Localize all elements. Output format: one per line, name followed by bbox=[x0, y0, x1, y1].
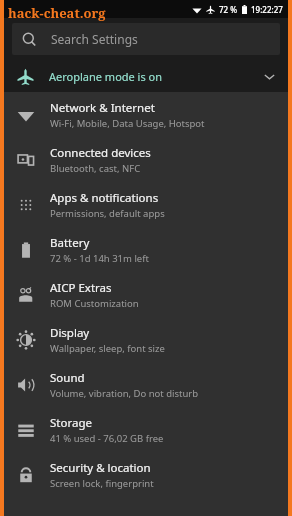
staticText: Network & Internet bbox=[50, 100, 155, 116]
staticText: Storage bbox=[50, 415, 92, 431]
staticText: hack-cheat.org bbox=[8, 4, 106, 22]
staticText: Search Settings bbox=[51, 31, 138, 47]
staticText: 72 % bbox=[219, 4, 238, 15]
button[interactable]: Network & Internet bbox=[4, 92, 288, 137]
staticText: Aeroplane mode is on bbox=[49, 69, 163, 84]
staticText: 41 % used - 76,02 GB free bbox=[50, 432, 164, 445]
staticText: Battery bbox=[50, 235, 90, 251]
staticText: Volume, vibration, Do not disturb bbox=[50, 387, 199, 400]
button[interactable]: Aeroplane mode is on bbox=[4, 60, 288, 92]
button[interactable]: Search Settings bbox=[12, 23, 280, 55]
button[interactable]: AICP Extras bbox=[4, 272, 288, 317]
button[interactable]: Connected devices bbox=[4, 137, 288, 182]
staticText: Sound bbox=[50, 370, 85, 386]
button[interactable]: Apps & notifications bbox=[4, 182, 288, 227]
staticText: AICP Extras bbox=[50, 280, 112, 296]
staticText: 19:22:27 bbox=[251, 4, 283, 15]
staticText: Security & location bbox=[50, 460, 151, 476]
staticText: Display bbox=[50, 325, 90, 341]
button[interactable]: Battery bbox=[4, 227, 288, 272]
staticText: Bluetooth, cast, NFC bbox=[50, 162, 141, 175]
staticText: Apps & notifications bbox=[50, 190, 159, 206]
button[interactable]: Security & location bbox=[4, 452, 288, 497]
button[interactable]: Storage bbox=[4, 407, 288, 452]
staticText: Wi-Fi, Mobile, Data Usage, Hotspot bbox=[50, 117, 205, 130]
button[interactable]: Display bbox=[4, 317, 288, 362]
button[interactable]: Sound bbox=[4, 362, 288, 407]
staticText: Connected devices bbox=[50, 145, 151, 161]
staticText: Screen lock, fingerprint bbox=[50, 477, 154, 490]
staticText: Wallpaper, sleep, font size bbox=[50, 342, 165, 355]
staticText: Permissions, default apps bbox=[50, 207, 165, 220]
staticText: ROM Customization bbox=[50, 297, 139, 310]
staticText: 72 % - 1d 14h 31m left bbox=[50, 252, 149, 265]
